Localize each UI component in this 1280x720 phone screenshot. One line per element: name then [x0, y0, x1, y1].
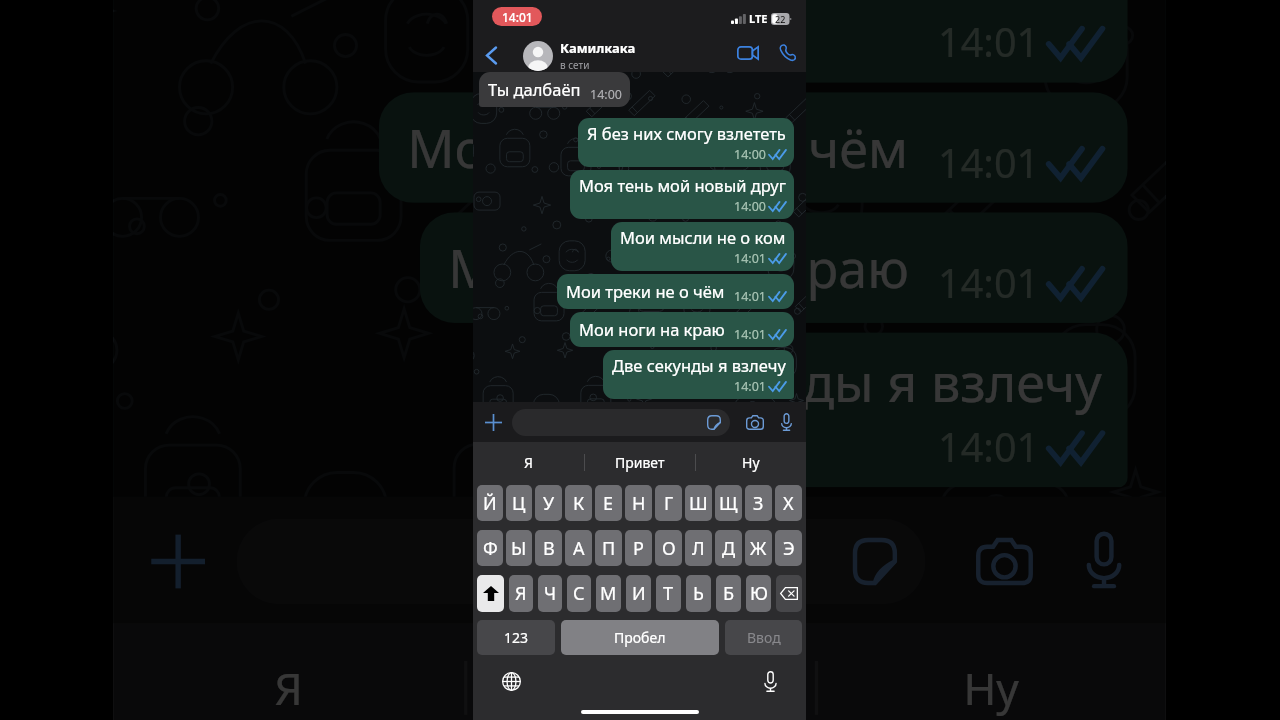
- button[interactable]: Я: [113, 623, 464, 720]
- button[interactable]: В: [535, 530, 562, 566]
- button[interactable]: Р: [625, 530, 652, 566]
- button[interactable]: Ы: [506, 530, 532, 566]
- button[interactable]: Ну: [818, 623, 1166, 720]
- button[interactable]: Stickers: [237, 519, 925, 604]
- staticText: в сети: [560, 58, 590, 72]
- staticText: Ц: [512, 491, 526, 516]
- button[interactable]: Т: [656, 575, 681, 612]
- staticText: Ш: [689, 491, 708, 516]
- button[interactable]: Voice message: [773, 402, 799, 442]
- button[interactable]: Две секунды я взлечу: [524, 332, 1128, 487]
- button[interactable]: Мои мысли не о ком: [549, 0, 1128, 83]
- staticText: П: [602, 536, 616, 561]
- staticText: 123: [504, 628, 529, 647]
- button[interactable]: Ч: [538, 575, 562, 612]
- button[interactable]: Camera: [740, 402, 770, 442]
- button[interactable]: Н: [625, 485, 652, 521]
- staticText: 14:01: [938, 136, 1039, 190]
- button[interactable]: Stickers: [512, 409, 730, 436]
- staticText: С: [573, 581, 585, 606]
- staticText: И: [632, 581, 646, 606]
- button[interactable]: М: [596, 575, 621, 612]
- button[interactable]: Моя тень мой новый друг: [570, 170, 794, 219]
- button[interactable]: Ь: [686, 575, 711, 612]
- button[interactable]: Backspace: [776, 575, 802, 612]
- button[interactable]: Voice message: [1061, 497, 1144, 623]
- button[interactable]: Ф: [477, 530, 503, 566]
- staticText: Я без них смогу взлететь: [587, 122, 786, 144]
- staticText: Мои ноги на краю: [579, 318, 725, 340]
- staticText: Я: [524, 453, 533, 472]
- button[interactable]: Г: [655, 485, 682, 521]
- button[interactable]: Ввод: [725, 620, 802, 655]
- button[interactable]: Мои ноги на краю: [420, 212, 1128, 323]
- button[interactable]: Камилкака: [523, 36, 636, 75]
- button[interactable]: О: [655, 530, 682, 566]
- button[interactable]: Attach: [126, 497, 227, 623]
- button[interactable]: Back: [477, 36, 505, 75]
- button[interactable]: К: [565, 485, 592, 521]
- button[interactable]: П: [595, 530, 622, 566]
- staticText: Две секунды я взлечу: [612, 354, 786, 376]
- staticText: А: [573, 536, 585, 561]
- button[interactable]: Ю: [746, 575, 771, 612]
- button[interactable]: Э: [775, 530, 802, 566]
- button[interactable]: Д: [715, 530, 742, 566]
- button[interactable]: А: [565, 530, 592, 566]
- button[interactable]: Я: [509, 575, 533, 612]
- button[interactable]: Ш: [685, 485, 712, 521]
- button[interactable]: Camera: [957, 497, 1052, 623]
- button[interactable]: Пробел: [561, 620, 719, 655]
- staticText: Ь: [693, 581, 704, 606]
- staticText: 14:01: [502, 9, 533, 25]
- button[interactable]: Й: [477, 485, 503, 521]
- button[interactable]: Щ: [715, 485, 742, 521]
- button[interactable]: 123: [477, 620, 555, 655]
- button[interactable]: Change keyboard: [493, 664, 529, 698]
- button[interactable]: Е: [595, 485, 622, 521]
- button[interactable]: Две секунды я взлечу: [603, 350, 794, 399]
- button[interactable]: Мои мысли не о ком: [611, 222, 794, 271]
- button[interactable]: Привет: [585, 442, 695, 483]
- button[interactable]: Х: [775, 485, 802, 521]
- staticText: Б: [723, 581, 735, 606]
- staticText: Мои мысли не о ком: [620, 226, 786, 248]
- button[interactable]: Я: [473, 442, 584, 483]
- button[interactable]: Мои треки не о чём: [379, 92, 1128, 203]
- button[interactable]: И: [626, 575, 651, 612]
- staticText: Т: [663, 581, 674, 606]
- button[interactable]: Я без них смогу взлететь: [578, 118, 794, 167]
- staticText: Щ: [719, 491, 738, 516]
- staticText: 14:01: [734, 250, 766, 267]
- button[interactable]: Ну: [696, 442, 806, 483]
- button[interactable]: Привет: [467, 623, 815, 720]
- button[interactable]: Ц: [506, 485, 532, 521]
- button[interactable]: Shift: [477, 575, 504, 612]
- button[interactable]: Video call: [728, 33, 768, 72]
- button[interactable]: Call: [768, 33, 806, 72]
- staticText: Ну: [963, 658, 1020, 718]
- button[interactable]: У: [535, 485, 562, 521]
- button[interactable]: Мои ноги на краю: [570, 312, 794, 347]
- button[interactable]: З: [745, 485, 772, 521]
- button[interactable]: Л: [685, 530, 712, 566]
- button[interactable]: Dictate: [752, 664, 788, 698]
- button[interactable]: Stickers: [707, 415, 721, 430]
- button[interactable]: Ты далбаёп: [479, 72, 630, 107]
- button[interactable]: С: [567, 575, 591, 612]
- staticText: Ввод: [747, 628, 781, 647]
- button[interactable]: Recording time: [492, 7, 542, 26]
- staticText: Ф: [483, 536, 498, 561]
- button[interactable]: Мои треки не о чём: [557, 274, 794, 309]
- staticText: Х: [783, 491, 794, 516]
- staticText: Пробел: [614, 628, 666, 647]
- staticText: 22: [775, 13, 786, 25]
- button[interactable]: Stickers: [853, 538, 897, 585]
- staticText: Г: [664, 491, 674, 516]
- button[interactable]: Attach: [477, 402, 509, 442]
- button[interactable]: Ж: [745, 530, 772, 566]
- staticText: М: [600, 581, 617, 606]
- button[interactable]: Б: [716, 575, 741, 612]
- staticText: Р: [633, 536, 644, 561]
- staticText: 14:01: [938, 257, 1039, 310]
